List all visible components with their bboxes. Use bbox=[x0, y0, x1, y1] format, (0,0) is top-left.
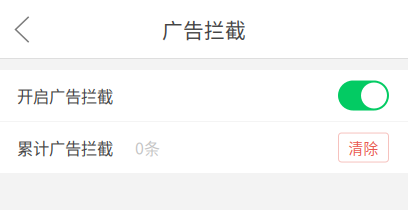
staticText: 开启广告拦截 bbox=[17, 84, 113, 107]
staticText: 累计广告拦截 bbox=[17, 136, 113, 159]
staticText: 0条 bbox=[135, 136, 160, 159]
button[interactable]: 返回 bbox=[0, 3, 44, 55]
staticText: 清除 bbox=[348, 137, 378, 158]
button[interactable]: 开启广告拦截 bbox=[338, 80, 389, 110]
button[interactable]: 清除 bbox=[338, 132, 389, 162]
staticText: 广告拦截 bbox=[162, 14, 246, 44]
